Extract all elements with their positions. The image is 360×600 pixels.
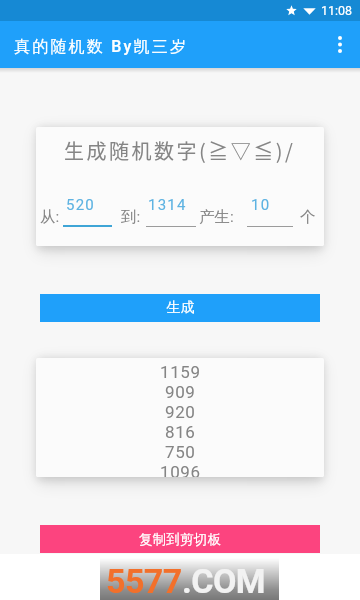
staticText: 从: — [40, 207, 60, 227]
staticText: 产生: — [199, 207, 234, 227]
staticText: .COM — [182, 561, 266, 600]
staticText: 816 — [165, 422, 196, 442]
staticText: 1096 — [160, 462, 201, 477]
staticText: 11:08 — [321, 3, 353, 18]
staticText: 复制到剪切板 — [139, 531, 222, 548]
staticText: 1159 — [160, 362, 201, 382]
staticText: 到: — [121, 207, 141, 227]
staticText: 生成 — [166, 299, 195, 317]
button[interactable]: 复制到剪切板 — [40, 525, 320, 553]
button[interactable]: 生成 — [40, 294, 320, 322]
staticText: 个 — [300, 207, 316, 227]
staticText: 909 — [165, 382, 196, 402]
staticText: 750 — [165, 442, 196, 462]
staticText: 生成随机数字(≧▽≦)/ — [64, 136, 296, 165]
staticText: 真的随机数 By凯三岁 — [14, 37, 189, 57]
staticText: 5577 — [106, 561, 182, 600]
staticText: 920 — [165, 402, 196, 422]
button[interactable]: More options — [320, 21, 360, 68]
staticText: 520 — [66, 196, 95, 214]
staticText: 10 — [251, 196, 271, 214]
staticText: 1314 — [148, 196, 187, 214]
